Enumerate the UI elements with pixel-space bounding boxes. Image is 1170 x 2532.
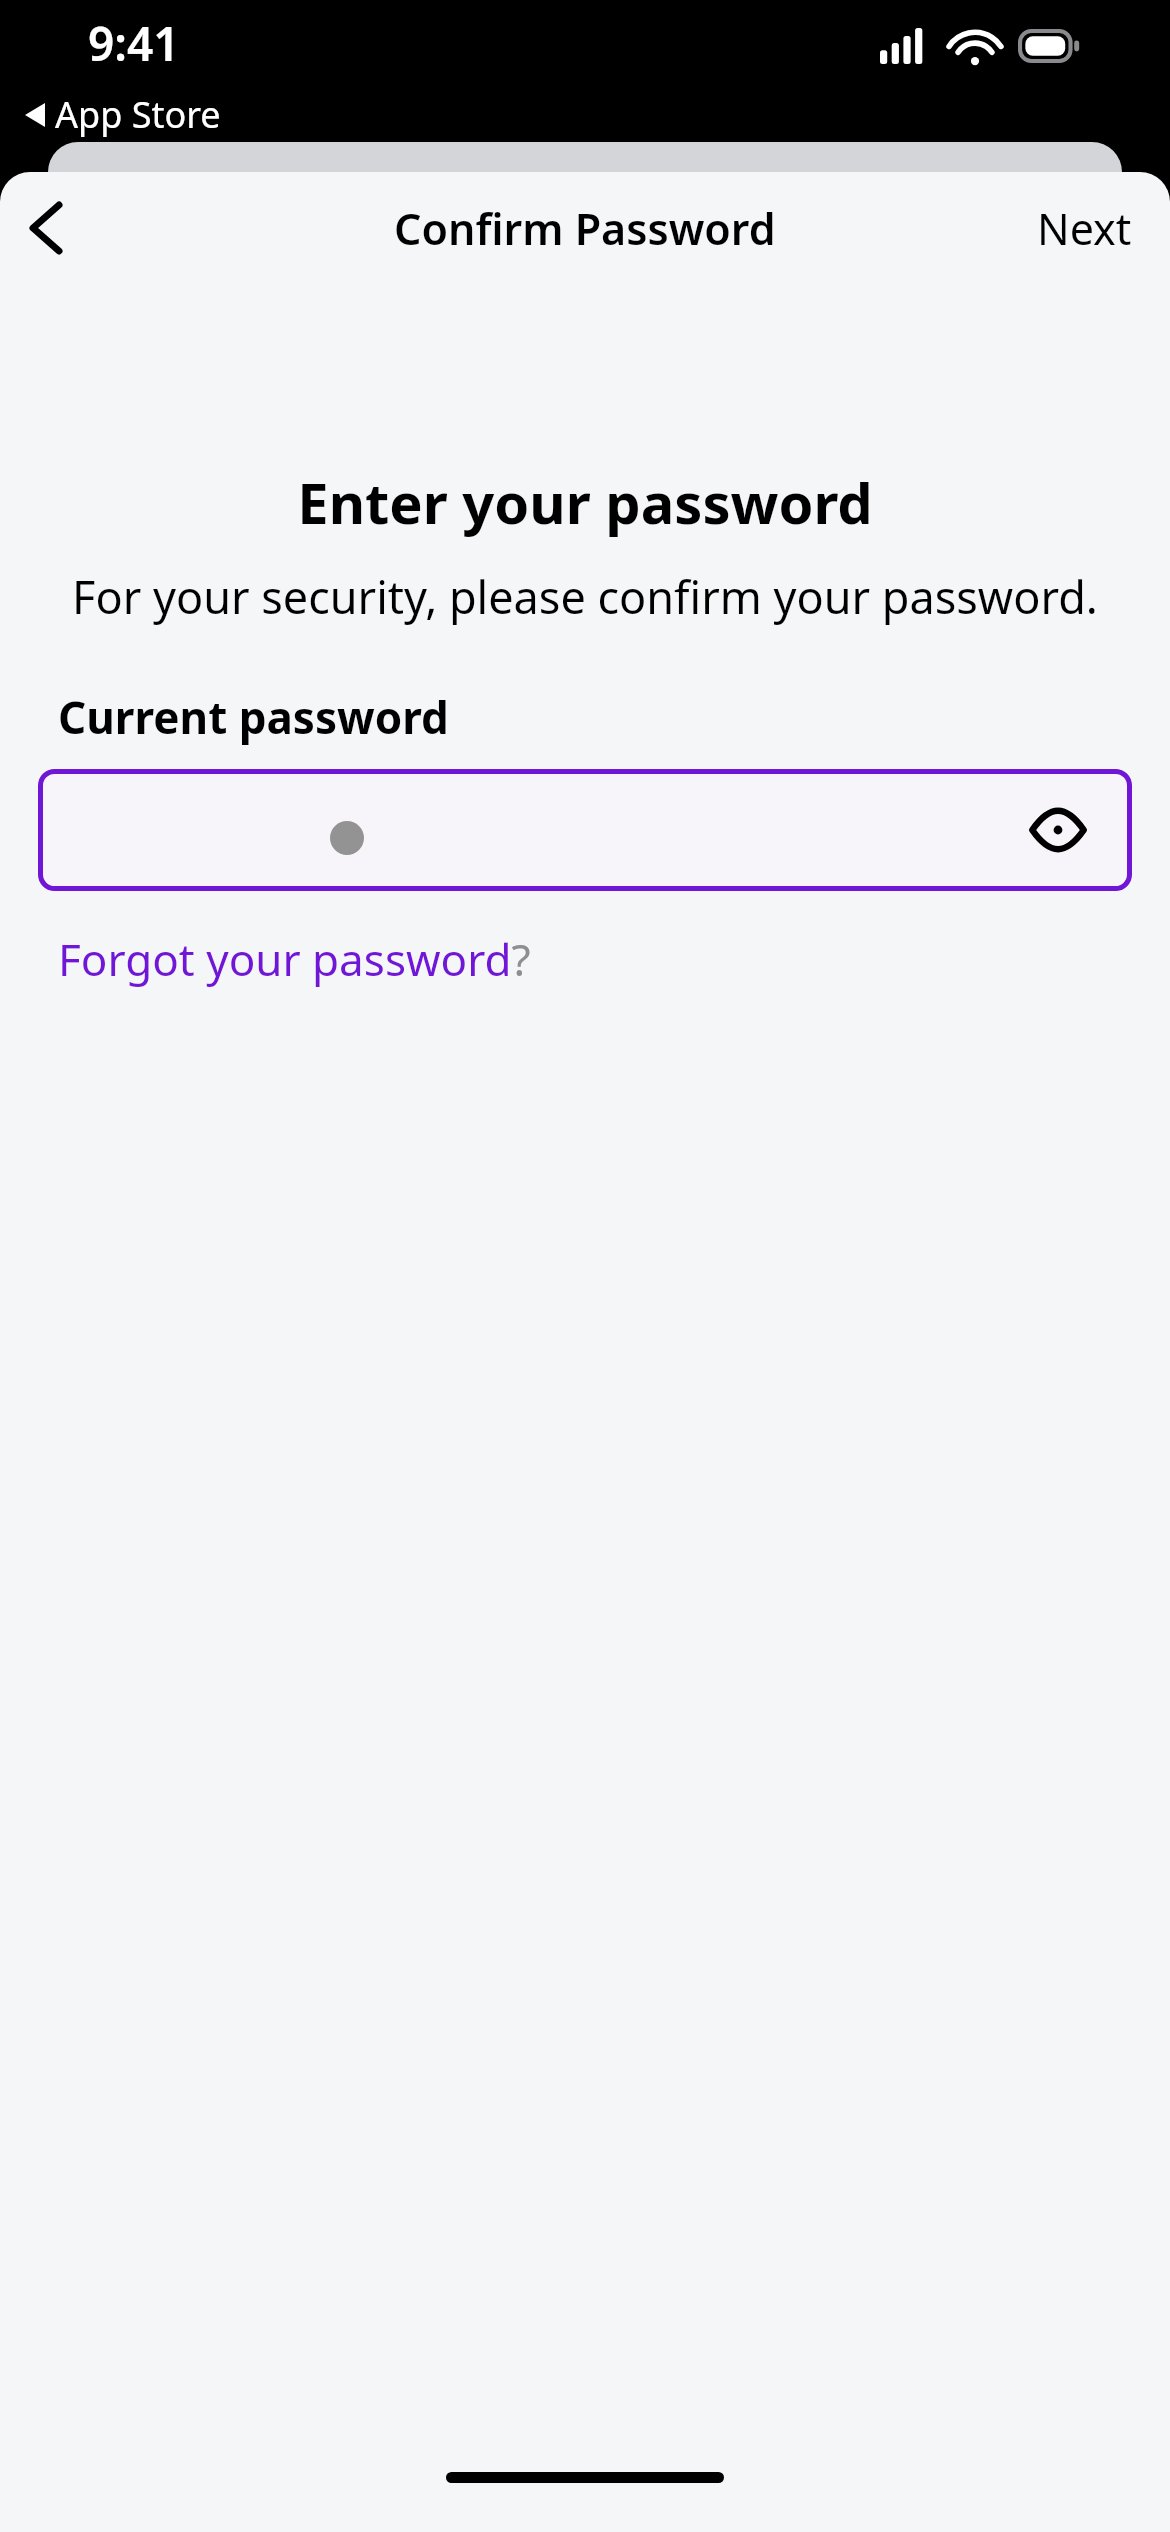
- button[interactable]: Show password: [38, 769, 1132, 891]
- staticText: Next: [1037, 199, 1132, 258]
- staticText: For your security, please confirm your p…: [72, 566, 1098, 627]
- staticText: Forgot your password?: [58, 929, 531, 989]
- button[interactable]: Forgot your password?: [58, 929, 531, 989]
- staticText: App Store: [55, 90, 221, 139]
- staticText: Current password: [58, 687, 449, 747]
- staticText: Confirm Password: [394, 199, 776, 258]
- staticText: 9:41: [88, 12, 180, 75]
- staticText: Enter your password: [297, 464, 873, 540]
- button[interactable]: Show password: [1020, 792, 1096, 868]
- button[interactable]: Back to App Store: [25, 90, 221, 139]
- button[interactable]: Back: [6, 188, 86, 268]
- button[interactable]: Next: [999, 183, 1170, 274]
